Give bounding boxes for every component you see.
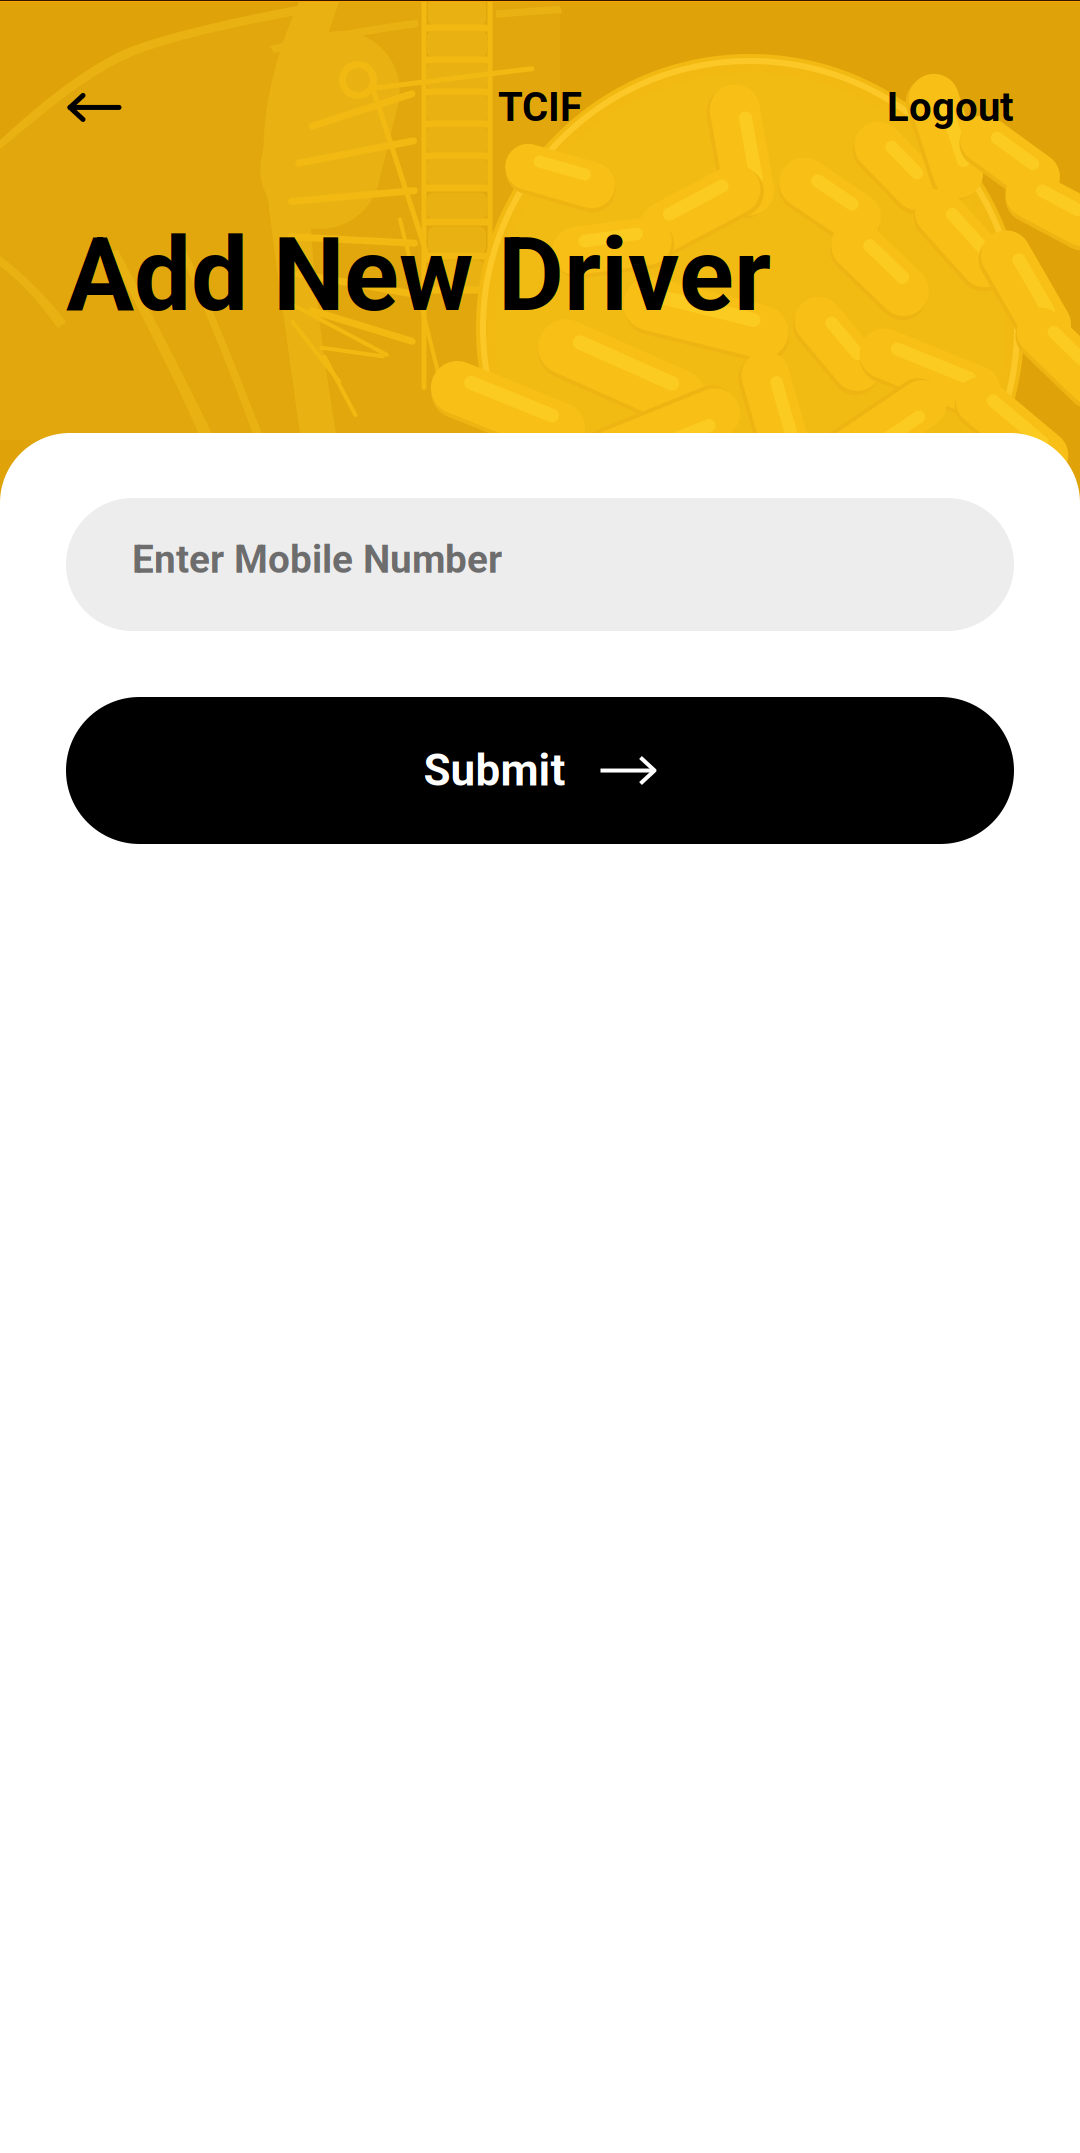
- staticText: TCIF: [498, 84, 582, 131]
- staticText: Add New Driver: [66, 216, 771, 335]
- button[interactable]: Submit: [66, 697, 1014, 844]
- staticText: Submit: [423, 745, 565, 796]
- staticText: Enter Mobile Number: [132, 537, 502, 582]
- button[interactable]: Logout: [887, 84, 1014, 131]
- button[interactable]: Enter Mobile Number: [66, 498, 1014, 631]
- button[interactable]: Back: [66, 94, 121, 120]
- staticText: Logout: [887, 84, 1014, 131]
